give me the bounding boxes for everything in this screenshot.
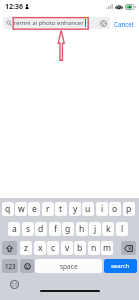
button[interactable]: p	[123, 202, 135, 216]
button[interactable]: Delete	[121, 241, 136, 255]
button[interactable]: h	[76, 222, 88, 236]
button[interactable]: n	[88, 241, 100, 255]
staticText: u	[85, 203, 91, 215]
staticText: g	[65, 223, 71, 235]
staticText: z	[24, 242, 29, 254]
staticText: d	[38, 223, 44, 235]
staticText: j	[94, 223, 97, 235]
button[interactable]: x	[34, 241, 46, 255]
button[interactable]: s	[22, 222, 34, 236]
staticText: i	[101, 203, 104, 215]
button[interactable]: u	[82, 202, 94, 216]
button[interactable]: space	[35, 259, 102, 273]
button[interactable]: remni ai photo enhancer	[3, 17, 110, 29]
button[interactable]: 123	[2, 259, 18, 273]
button[interactable]: a	[8, 222, 20, 236]
button[interactable]: v	[61, 241, 73, 255]
staticText: Cancel	[114, 20, 134, 28]
staticText: 12:36	[5, 2, 23, 12]
staticText: n	[91, 242, 97, 254]
staticText: v	[65, 242, 70, 254]
button[interactable]: f	[49, 222, 61, 236]
button[interactable]: w	[15, 202, 27, 216]
button[interactable]: Emoji	[20, 259, 34, 273]
staticText: space	[60, 262, 78, 271]
staticText: e	[32, 203, 37, 215]
button[interactable]: j	[89, 222, 101, 236]
staticText: search	[111, 262, 130, 270]
staticText: x	[38, 242, 43, 254]
button[interactable]: o	[109, 202, 121, 216]
button[interactable]: b	[74, 241, 86, 255]
staticText: m	[103, 242, 112, 254]
button[interactable]: c	[47, 241, 59, 255]
staticText: q	[5, 203, 11, 215]
staticText: 123	[5, 262, 16, 270]
staticText: c	[51, 242, 56, 254]
button[interactable]: Clear text	[100, 20, 107, 27]
button[interactable]: e	[28, 202, 40, 216]
staticText: b	[77, 242, 83, 254]
button[interactable]: z	[20, 241, 32, 255]
staticText: o	[112, 203, 118, 215]
button[interactable]: i	[96, 202, 108, 216]
button[interactable]: g	[62, 222, 74, 236]
staticText: k	[106, 223, 111, 235]
button[interactable]: Shift	[2, 241, 17, 255]
button[interactable]: search	[104, 259, 137, 273]
button[interactable]: Switch keyboard	[10, 280, 19, 289]
staticText: t	[59, 203, 63, 215]
staticText: p	[126, 203, 132, 215]
staticText: remni ai photo enhancer	[14, 19, 84, 27]
staticText: y	[73, 203, 78, 215]
button[interactable]: t	[55, 202, 67, 216]
staticText: h	[79, 223, 85, 235]
button[interactable]: r	[42, 202, 54, 216]
button[interactable]: l	[116, 222, 128, 236]
button[interactable]: d	[35, 222, 47, 236]
button[interactable]: y	[69, 202, 81, 216]
button[interactable]: k	[102, 222, 114, 236]
button[interactable]: m	[101, 241, 113, 255]
staticText: w	[18, 203, 25, 215]
button[interactable]: q	[2, 202, 14, 216]
staticText: l	[121, 223, 124, 235]
staticText: a	[12, 223, 17, 235]
staticText: s	[26, 223, 31, 235]
button[interactable]: Cancel	[112, 17, 136, 30]
staticText: r	[46, 203, 50, 215]
staticText: f	[54, 223, 57, 235]
